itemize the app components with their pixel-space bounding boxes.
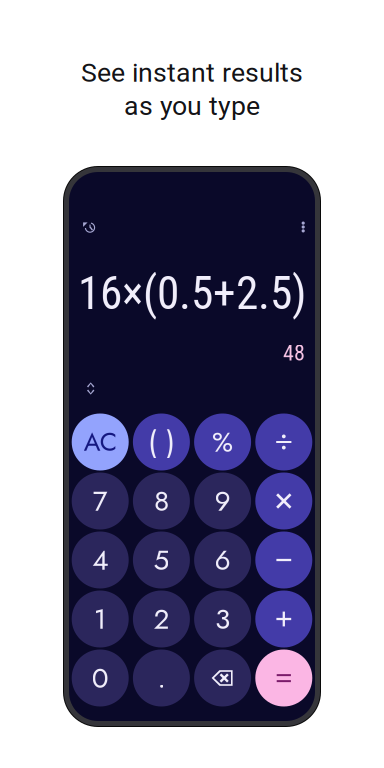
- staticText: 5: [153, 540, 169, 580]
- button[interactable]: %: [194, 413, 251, 470]
- staticText: as you type: [124, 90, 260, 122]
- button[interactable]: 9: [194, 472, 251, 529]
- button[interactable]: [255, 531, 312, 588]
- staticText: ( ): [148, 421, 175, 463]
- staticText: 8: [154, 481, 169, 521]
- staticText: 1: [94, 599, 107, 639]
- button[interactable]: ( ): [133, 413, 190, 470]
- staticText: %: [212, 422, 233, 462]
- button[interactable]: History: [83, 221, 95, 233]
- button[interactable]: AC: [72, 413, 129, 470]
- button[interactable]: [255, 472, 312, 529]
- staticText: .: [157, 658, 165, 698]
- button[interactable]: 2: [133, 590, 190, 647]
- staticText: 7: [93, 481, 108, 521]
- staticText: 6: [215, 540, 231, 580]
- button[interactable]: 5: [133, 531, 190, 588]
- button[interactable]: .: [133, 649, 190, 706]
- button[interactable]: 8: [133, 472, 190, 529]
- button[interactable]: [255, 413, 312, 470]
- button[interactable]: [194, 649, 251, 706]
- button[interactable]: 6: [194, 531, 251, 588]
- button[interactable]: 0: [72, 649, 129, 706]
- staticText: 2: [153, 599, 169, 639]
- button[interactable]: [255, 590, 312, 647]
- staticText: 16×(0.5+2.5): [78, 267, 306, 320]
- button[interactable]: [255, 649, 312, 706]
- staticText: 0: [92, 658, 109, 698]
- button[interactable]: 1: [72, 590, 129, 647]
- staticText: See instant results: [81, 57, 303, 88]
- button[interactable]: 4: [72, 531, 129, 588]
- staticText: 48: [283, 340, 305, 366]
- button[interactable]: More options: [301, 221, 305, 233]
- staticText: AC: [84, 424, 117, 460]
- button[interactable]: 7: [72, 472, 129, 529]
- staticText: 9: [215, 481, 231, 521]
- staticText: 3: [215, 599, 230, 639]
- staticText: 4: [92, 540, 108, 580]
- button[interactable]: 3: [194, 590, 251, 647]
